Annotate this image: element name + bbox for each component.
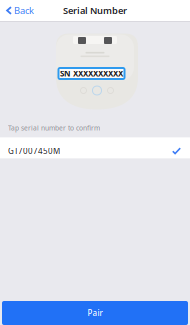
button[interactable]: Back (0, 0, 34, 21)
button[interactable]: Pair (2, 301, 188, 325)
staticText: Pair (87, 308, 102, 318)
staticText: Tap serial number to confirm (8, 123, 100, 132)
staticText: Serial Number (63, 4, 127, 17)
staticText: Back (14, 4, 34, 17)
staticText: GT7007450M (8, 145, 60, 156)
button[interactable]: GT7007450M (0, 137, 190, 158)
staticText: SN XXXXXXXXXX (60, 68, 123, 79)
